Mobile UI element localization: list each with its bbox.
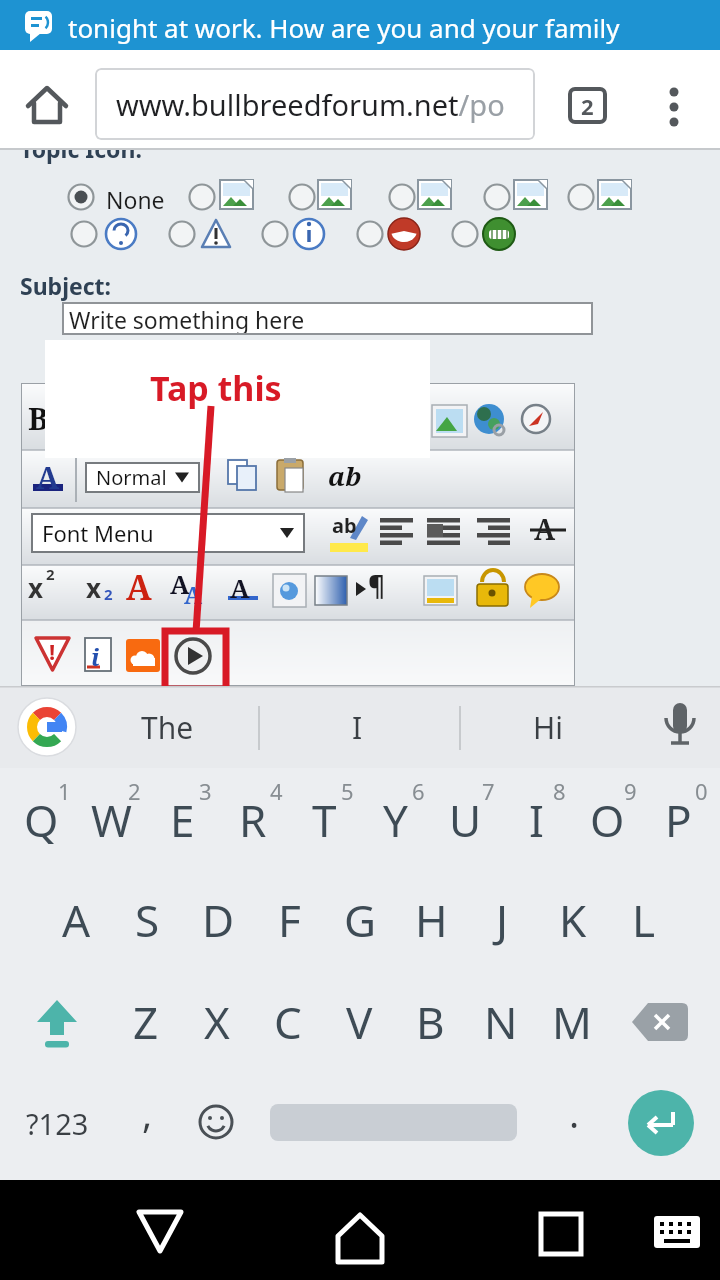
staticText: www.bullbreedforum.net/po: [116, 85, 505, 124]
staticText: V: [346, 992, 373, 1052]
staticText: Normal: [96, 464, 167, 491]
button[interactable]: C: [255, 989, 321, 1055]
staticText: A: [62, 890, 91, 950]
button[interactable]: H: [398, 887, 464, 953]
staticText: J: [496, 890, 509, 950]
staticText: I: [352, 707, 363, 748]
button[interactable]: R: [220, 787, 286, 853]
button[interactable]: [130, 1202, 190, 1262]
button[interactable]: .: [553, 1095, 595, 1155]
button[interactable]: [18, 698, 76, 756]
staticText: A: [126, 564, 152, 610]
staticText: A: [184, 578, 203, 611]
staticText: O: [590, 790, 625, 850]
button[interactable]: Font Menu: [31, 513, 305, 553]
button[interactable]: ,: [126, 1095, 168, 1155]
staticText: x: [86, 570, 102, 605]
staticText: Font Menu: [42, 518, 154, 548]
button[interactable]: The: [107, 702, 227, 752]
staticText: E: [170, 790, 195, 850]
button[interactable]: D: [185, 887, 251, 953]
button[interactable]: J: [469, 887, 535, 953]
staticText: G: [344, 890, 377, 950]
staticText: 8: [553, 776, 566, 806]
button[interactable]: Hi: [488, 702, 608, 752]
button[interactable]: E: [149, 787, 215, 853]
button[interactable]: N: [468, 989, 534, 1055]
button[interactable]: [330, 1205, 390, 1265]
button[interactable]: X: [184, 989, 250, 1055]
staticText: ab: [332, 512, 357, 539]
staticText: None: [106, 184, 165, 215]
staticText: 9: [624, 776, 637, 806]
staticText: 2: [128, 776, 141, 806]
button[interactable]: www.bullbreedforum.net/po: [95, 68, 535, 140]
button[interactable]: [30, 990, 85, 1050]
button[interactable]: G: [327, 887, 393, 953]
button[interactable]: [20, 80, 75, 130]
staticText: D: [202, 890, 235, 950]
button[interactable]: O: [574, 787, 640, 853]
staticText: N: [484, 992, 518, 1052]
button[interactable]: I: [297, 702, 417, 752]
button[interactable]: [655, 80, 695, 135]
staticText: B: [416, 992, 445, 1052]
staticText: A: [36, 456, 60, 498]
staticText: Subject:: [20, 270, 112, 301]
staticText: x: [28, 570, 44, 605]
button[interactable]: S: [114, 887, 180, 953]
staticText: 0: [695, 776, 708, 806]
button[interactable]: K: [540, 887, 606, 953]
staticText: ,: [142, 1087, 153, 1139]
button[interactable]: Write something here: [62, 302, 593, 335]
staticText: Z: [133, 992, 159, 1052]
button[interactable]: B: [397, 989, 463, 1055]
button[interactable]: Z: [113, 989, 179, 1055]
button[interactable]: Q: [8, 787, 74, 853]
button[interactable]: Y: [362, 787, 428, 853]
staticText: 4: [270, 776, 283, 806]
staticText: R: [239, 790, 267, 850]
staticText: A: [230, 570, 250, 605]
staticText: Q: [24, 790, 59, 850]
staticText: tonight at work. How are you and your fa…: [68, 10, 620, 45]
staticText: !: [49, 636, 56, 666]
button[interactable]: I: [503, 787, 569, 853]
staticText: i: [91, 640, 100, 673]
staticText: 2: [104, 584, 113, 604]
button[interactable]: U: [432, 787, 498, 853]
button[interactable]: [655, 696, 705, 756]
staticText: K: [559, 890, 587, 950]
button[interactable]: M: [539, 989, 605, 1055]
staticText: F: [278, 890, 301, 950]
button[interactable]: 2: [568, 87, 607, 124]
staticText: ab: [328, 458, 362, 493]
button[interactable]: W: [78, 787, 144, 853]
button[interactable]: [628, 996, 692, 1048]
button[interactable]: T: [291, 787, 357, 853]
staticText: The: [141, 707, 194, 748]
staticText: 3: [199, 776, 212, 806]
staticText: 2: [581, 91, 594, 121]
button[interactable]: ?123: [12, 1098, 102, 1148]
button[interactable]: V: [326, 989, 392, 1055]
staticText: A: [170, 566, 190, 601]
button[interactable]: A: [43, 887, 109, 953]
button[interactable]: [531, 1204, 591, 1264]
button[interactable]: Normal: [85, 462, 200, 493]
staticText: 7: [482, 776, 495, 806]
staticText: Tap this: [150, 365, 282, 411]
staticText: Topic Icon:: [20, 150, 142, 164]
button[interactable]: [628, 1090, 694, 1156]
staticText: H: [415, 890, 448, 950]
button[interactable]: F: [256, 887, 322, 953]
staticText: A: [534, 510, 556, 548]
button[interactable]: [196, 1098, 238, 1148]
staticText: ?123: [26, 1104, 89, 1143]
button[interactable]: [645, 1202, 709, 1262]
staticText: X: [204, 992, 230, 1052]
staticText: M: [552, 992, 592, 1052]
button[interactable]: L: [611, 887, 677, 953]
button[interactable]: P: [645, 787, 711, 853]
